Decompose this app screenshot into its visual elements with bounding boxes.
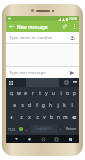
button[interactable]: Type name or number (6, 32, 79, 43)
button[interactable]: Back (25, 135, 33, 143)
staticText: i (60, 90, 62, 96)
button[interactable]: w (15, 87, 22, 99)
button[interactable]: Hide keyboard (12, 135, 20, 143)
staticText: t (39, 90, 41, 96)
staticText: 10:08 (69, 17, 77, 21)
staticText: p (73, 90, 76, 96)
button[interactable]: Add contact (68, 34, 76, 42)
staticText: b (50, 114, 53, 120)
button[interactable]: Type text message (6, 67, 79, 78)
button[interactable]: d (26, 99, 33, 111)
button[interactable]: h (47, 99, 54, 111)
staticText: g (42, 102, 45, 108)
staticText: New message (17, 24, 59, 30)
button[interactable]: x (25, 111, 33, 123)
button[interactable]: u (50, 87, 57, 99)
button[interactable]: e (22, 87, 29, 99)
button[interactable]: z (17, 111, 25, 123)
button[interactable]: Settings (64, 80, 69, 85)
staticText: r (32, 90, 34, 96)
button[interactable]: i (57, 87, 64, 99)
staticText: z (20, 114, 23, 120)
staticText: x (28, 114, 31, 120)
staticText: a (13, 102, 16, 108)
button[interactable]: s (18, 99, 26, 111)
staticText: , (26, 126, 28, 132)
button[interactable]: Emoji (17, 123, 24, 135)
staticText: s (21, 102, 24, 108)
staticText: u (52, 90, 55, 96)
button[interactable]: l (68, 99, 75, 111)
button[interactable]: Shift (6, 111, 17, 123)
staticText: o (66, 90, 69, 96)
button[interactable]: Menu (66, 135, 74, 143)
button[interactable]: Return (64, 123, 79, 135)
button[interactable]: t (36, 87, 43, 99)
staticText: m (63, 114, 68, 120)
button[interactable]: q (7, 87, 15, 99)
staticText: . (60, 126, 62, 132)
staticText: n (57, 114, 60, 120)
button[interactable]: f (33, 99, 40, 111)
button[interactable]: k (61, 99, 68, 111)
button[interactable]: Attach (59, 21, 70, 32)
button[interactable]: y (43, 87, 50, 99)
staticText: e (24, 90, 27, 96)
staticText: ?123 (8, 127, 16, 132)
button[interactable]: b (48, 111, 55, 123)
staticText: j (57, 102, 59, 108)
button[interactable]: p (71, 87, 78, 99)
staticText: Type text message (9, 70, 68, 76)
button[interactable]: c (33, 111, 41, 123)
staticText: q (10, 90, 13, 96)
button[interactable]: j (54, 99, 61, 111)
button[interactable]: r (29, 87, 36, 99)
button[interactable]: g (40, 99, 47, 111)
button[interactable]: v (41, 111, 48, 123)
staticText: Type name or number (9, 35, 68, 41)
button[interactable]: a (10, 99, 18, 111)
staticText: f (36, 102, 38, 108)
button[interactable]: Back (6, 21, 17, 32)
button[interactable]: Send (68, 69, 76, 77)
button[interactable]: Hide keyboard (72, 80, 77, 85)
button[interactable]: o (64, 87, 71, 99)
button[interactable]: . (58, 123, 64, 135)
button[interactable]: ?123 (6, 123, 17, 135)
button[interactable]: Recent apps (52, 135, 60, 143)
button[interactable]: m (62, 111, 69, 123)
staticText: English(US) (36, 127, 52, 131)
staticText: v (43, 114, 46, 120)
button[interactable]: n (55, 111, 62, 123)
staticText: Return (66, 127, 77, 131)
staticText: y (45, 90, 48, 96)
staticText: w (17, 90, 21, 96)
button[interactable]: More options (70, 22, 79, 31)
button[interactable]: Backspace (69, 111, 79, 123)
staticText: d (28, 102, 31, 108)
staticText: h (49, 102, 52, 108)
button[interactable]: , (24, 123, 30, 135)
button[interactable]: Home (39, 135, 47, 143)
staticText: k (63, 102, 66, 108)
staticText: l (71, 102, 73, 108)
staticText: c (36, 114, 39, 120)
button[interactable]: Keyboard options (8, 80, 14, 86)
button[interactable]: English(US) (31, 125, 57, 133)
